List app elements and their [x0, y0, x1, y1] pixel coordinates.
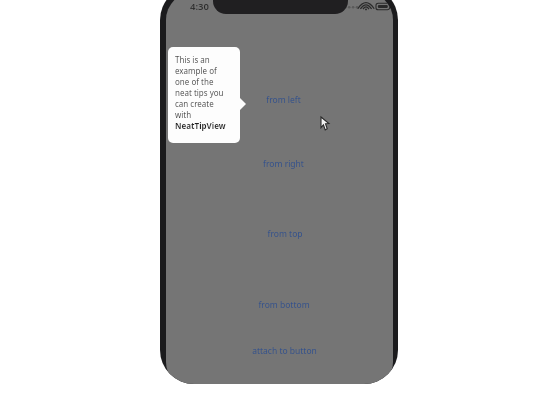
staticText: one of the — [175, 76, 214, 87]
staticText: NeatTipView — [175, 120, 226, 131]
button[interactable]: attach to button — [236, 344, 332, 358]
button[interactable]: from left — [254, 93, 312, 107]
staticText: This is an — [175, 54, 210, 65]
button[interactable]: from bottom — [246, 298, 322, 312]
button[interactable]: from right — [252, 157, 314, 171]
staticText: attach to button — [252, 345, 317, 357]
staticText: from top — [267, 228, 303, 240]
staticText: from left — [266, 94, 301, 106]
staticText: example of — [175, 65, 217, 76]
button[interactable]: from top — [256, 227, 314, 241]
staticText: from right — [263, 158, 304, 170]
staticText: neat tips you — [175, 87, 224, 98]
staticText: 4:30 — [190, 0, 209, 13]
button[interactable]: This is an — [168, 47, 240, 143]
staticText: from bottom — [258, 299, 310, 311]
staticText: with — [175, 109, 192, 120]
staticText: can create — [175, 98, 214, 109]
